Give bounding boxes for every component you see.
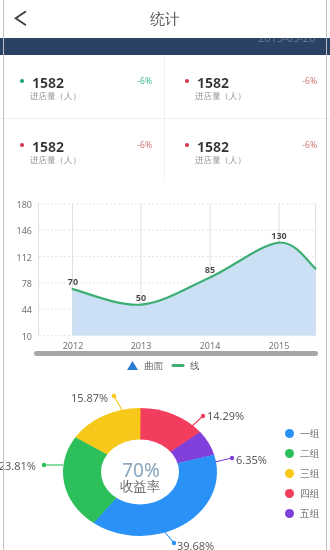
staticText: 15.87% (71, 390, 109, 405)
button[interactable]: 三组 (285, 464, 320, 482)
staticText: 三组 (300, 467, 320, 480)
staticText: 一组 (300, 427, 320, 440)
staticText: 39.68% (177, 538, 215, 550)
staticText: 180 (7, 198, 32, 210)
staticText: 1582 (32, 73, 65, 92)
staticText: 10 (7, 330, 32, 342)
staticText: 进店量（人） (30, 155, 81, 166)
staticText: 1582 (197, 137, 230, 156)
staticText: -6% (124, 75, 152, 87)
staticText: 2015-05-20 (258, 38, 316, 45)
staticText: 14.29% (207, 408, 245, 423)
staticText: 曲面 (144, 360, 163, 372)
staticText: 23.81% (0, 458, 36, 473)
staticText: 进店量（人） (195, 155, 246, 166)
button[interactable]: 二组 (285, 444, 320, 462)
button[interactable]: 1582 (0, 119, 164, 178)
staticText: 146 (7, 224, 32, 236)
button[interactable]: 曲面 (127, 359, 200, 372)
staticText: 2014 (196, 339, 224, 351)
button[interactable]: 一组 (285, 424, 320, 442)
staticText: 44 (7, 303, 32, 315)
staticText: 二组 (300, 447, 320, 460)
staticText: 进店量（人） (195, 91, 246, 102)
staticText: 2012 (59, 339, 87, 351)
staticText: 50 (127, 291, 155, 303)
staticText: 70 (59, 275, 87, 287)
staticText: -6% (289, 139, 317, 151)
staticText: 进店量（人） (30, 91, 81, 102)
staticText: 2013 (127, 339, 155, 351)
staticText: 五组 (300, 507, 320, 520)
staticText: -6% (289, 75, 317, 87)
staticText: 统计 (140, 10, 190, 29)
staticText: 85 (196, 263, 224, 275)
staticText: -6% (124, 139, 152, 151)
button[interactable]: 四组 (285, 484, 320, 502)
staticText: 6.35% (236, 452, 267, 467)
button[interactable]: 1582 (165, 119, 330, 178)
staticText: 2015 (265, 339, 293, 351)
button[interactable]: 1582 (165, 55, 330, 118)
button[interactable]: 1582 (0, 55, 164, 118)
staticText: 线 (190, 360, 200, 372)
staticText: 1582 (197, 73, 230, 92)
staticText: 130 (265, 229, 293, 241)
staticText: 收益率 (100, 478, 180, 495)
staticText: 78 (7, 277, 32, 289)
staticText: 1582 (32, 137, 65, 156)
staticText: 四组 (300, 487, 320, 500)
staticText: 112 (7, 251, 32, 263)
button[interactable]: Back (6, 4, 34, 32)
button[interactable]: 五组 (285, 504, 320, 522)
staticText: 70% (101, 457, 181, 483)
